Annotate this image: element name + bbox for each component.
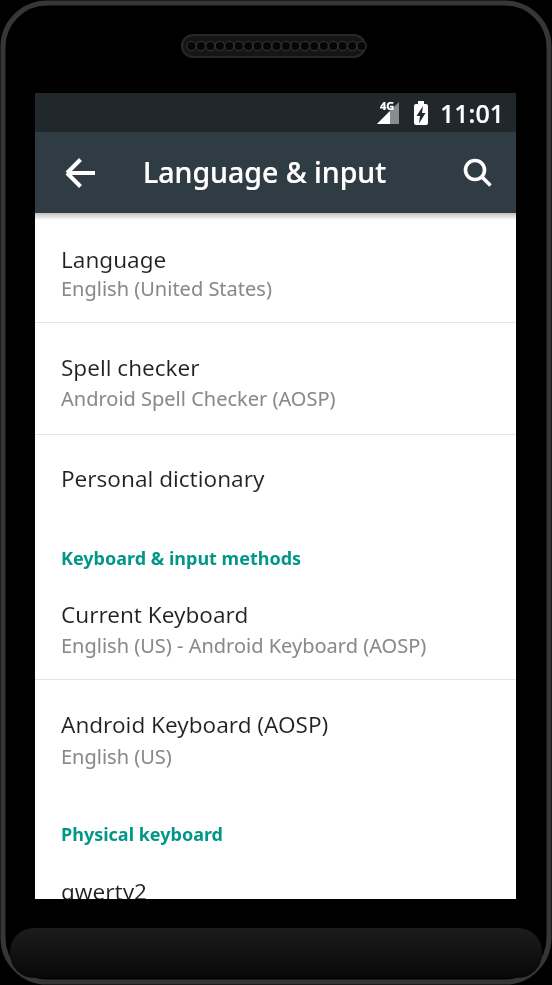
staticText: Language <box>61 244 167 275</box>
staticText: Physical keyboard <box>61 822 223 847</box>
staticText: Android Spell Checker (AOSP) <box>61 385 336 412</box>
staticText: Android Keyboard (AOSP) <box>61 709 329 740</box>
button[interactable] <box>35 680 516 790</box>
staticText: Language & input <box>143 153 387 192</box>
button[interactable] <box>35 573 516 679</box>
staticText: Personal dictionary <box>61 463 265 494</box>
button[interactable] <box>35 858 516 899</box>
button[interactable] <box>35 213 516 322</box>
staticText: Current Keyboard <box>61 599 249 630</box>
staticText: 4G <box>380 98 395 113</box>
staticText: English (United States) <box>61 275 272 302</box>
staticText: English (US) <box>61 743 172 770</box>
button[interactable] <box>63 155 99 191</box>
button[interactable] <box>35 323 516 434</box>
staticText: Keyboard & input methods <box>61 546 302 571</box>
button[interactable] <box>460 155 496 191</box>
staticText: Spell checker <box>61 352 200 383</box>
staticText: qwerty2 <box>61 876 147 899</box>
staticText: 11:01 <box>440 96 505 130</box>
button[interactable] <box>35 435 516 521</box>
staticText: English (US) - Android Keyboard (AOSP) <box>61 632 427 659</box>
